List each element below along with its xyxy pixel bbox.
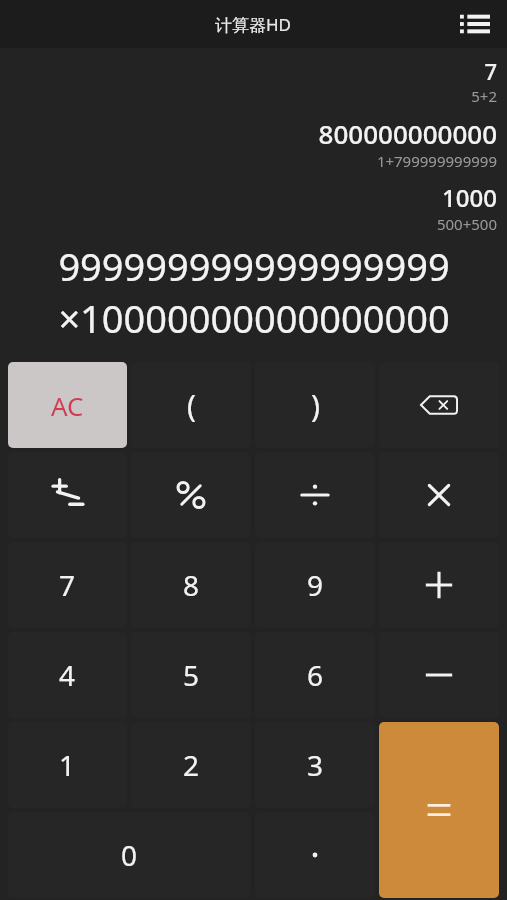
button[interactable]: 8: [131, 542, 251, 628]
staticText: (: [187, 385, 196, 426]
button[interactable]: Plus minus: [8, 452, 127, 538]
button[interactable]: Minus: [379, 632, 499, 718]
button[interactable]: (: [131, 362, 251, 448]
button[interactable]: 6: [255, 632, 375, 718]
staticText: 2: [183, 746, 200, 784]
staticText: 9: [307, 566, 324, 604]
staticText: 0: [121, 836, 138, 874]
button[interactable]: 1: [8, 722, 127, 808]
staticText: 999999999999999999: [58, 240, 450, 292]
staticText: 6: [307, 656, 324, 694]
staticText: AC: [51, 388, 84, 423]
button[interactable]: Plus: [379, 542, 499, 628]
button[interactable]: ): [255, 362, 375, 448]
staticText: 800000000000: [318, 116, 497, 151]
button[interactable]: AC: [8, 362, 127, 448]
button[interactable]: Divide: [255, 452, 375, 538]
button[interactable]: Equals: [379, 722, 499, 898]
button[interactable]: 4: [8, 632, 127, 718]
staticText: 5: [183, 656, 200, 694]
button[interactable]: Backspace: [379, 362, 499, 448]
button[interactable]: 5: [131, 632, 251, 718]
staticText: 3: [307, 746, 324, 784]
staticText: ×10000000000000000: [58, 292, 450, 344]
button[interactable]: 7: [8, 542, 127, 628]
button[interactable]: Percent: [131, 452, 251, 538]
staticText: 8: [183, 566, 200, 604]
staticText: 4: [59, 656, 76, 694]
staticText: 5+2: [471, 86, 497, 106]
staticText: 7: [484, 56, 497, 86]
staticText: 1: [59, 746, 76, 784]
button[interactable]: Decimal point: [255, 812, 375, 898]
staticText: 1000: [442, 181, 497, 214]
staticText: 1+799999999999: [376, 151, 497, 171]
button[interactable]: History list: [451, 0, 499, 48]
button[interactable]: 9: [255, 542, 375, 628]
staticText: 500+500: [436, 214, 497, 234]
button[interactable]: 2: [131, 722, 251, 808]
staticText: ): [311, 385, 320, 426]
button[interactable]: 3: [255, 722, 375, 808]
button[interactable]: 0: [8, 812, 251, 898]
staticText: 7: [59, 566, 76, 604]
button[interactable]: Multiply: [379, 452, 499, 538]
staticText: 计算器HD: [215, 13, 292, 36]
